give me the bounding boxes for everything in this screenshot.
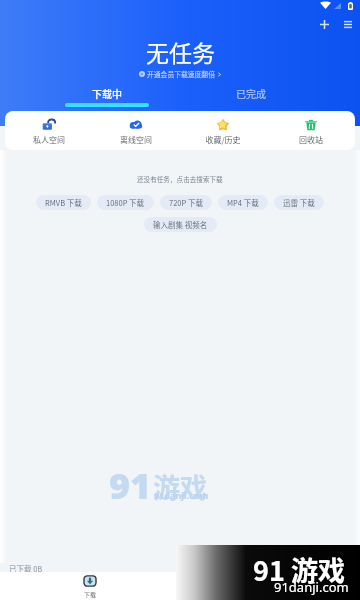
button[interactable]: 离线空间	[92, 111, 179, 146]
staticText: 离线空间	[120, 134, 152, 146]
staticText: 迅雷 下载	[283, 197, 315, 208]
staticText: 91danji.com	[274, 578, 349, 596]
staticText: 回收站	[299, 134, 323, 146]
staticText: 已完成	[236, 86, 266, 100]
button[interactable]: RMVB 下载	[36, 195, 91, 210]
staticText: MP4 下载	[227, 197, 259, 208]
staticText: 91danji.com	[154, 489, 209, 501]
staticText: 下载中	[92, 86, 122, 100]
button[interactable]: 还没有任务，点击去搜索下载	[137, 174, 223, 184]
staticText: 已下载 0B	[9, 563, 43, 574]
button[interactable]: 回收站	[267, 111, 355, 146]
button[interactable]: 下载	[76, 575, 104, 599]
staticText: 私人空间	[33, 134, 65, 146]
button[interactable]: 收藏/历史	[179, 111, 267, 146]
button[interactable]: 输入剧集 视频名	[144, 217, 217, 232]
button[interactable]: 已完成	[209, 86, 293, 107]
staticText: 720P 下载	[169, 197, 203, 208]
button[interactable]: MP4 下载	[218, 195, 268, 210]
staticText: 无任务	[146, 35, 215, 68]
staticText: 开通会员下载速度翻倍	[147, 69, 215, 79]
button[interactable]: Add task	[312, 12, 336, 36]
staticText: 收藏/历史	[205, 134, 241, 146]
button[interactable]: 下载中	[65, 86, 149, 107]
staticText: 1080P 下载	[106, 197, 145, 208]
button[interactable]: 720P 下载	[160, 195, 212, 210]
button[interactable]: Menu	[336, 12, 360, 36]
staticText: RMVB 下载	[45, 197, 82, 208]
staticText: 游戏	[153, 467, 207, 506]
button[interactable]: 私人空间	[5, 111, 92, 146]
button[interactable]: 开通会员下载速度翻倍	[139, 69, 222, 79]
staticText: 91	[109, 461, 152, 501]
staticText: 下载	[84, 590, 97, 599]
staticText: 91 游戏	[253, 550, 345, 589]
staticText: 输入剧集 视频名	[153, 219, 208, 230]
button[interactable]: 1080P 下载	[97, 195, 154, 210]
button[interactable]: 迅雷 下载	[274, 195, 324, 210]
